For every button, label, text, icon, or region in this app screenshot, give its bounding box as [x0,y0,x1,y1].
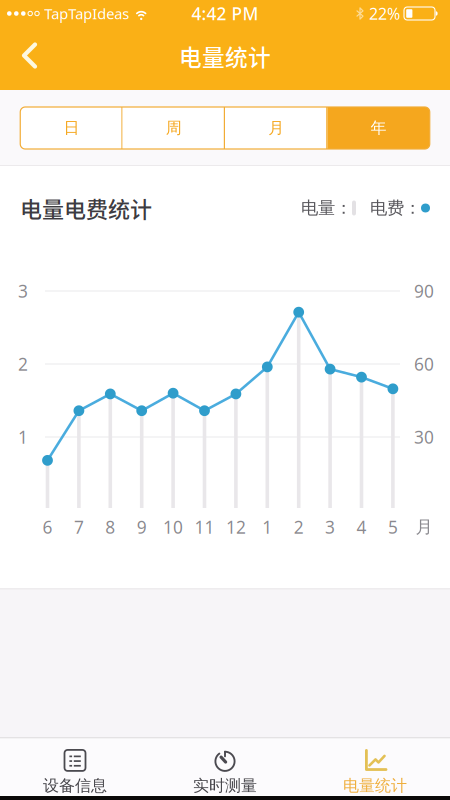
staticText: 9 [137,515,147,538]
staticText: 4:42 PM [191,2,258,25]
staticText: 7 [74,515,84,538]
button[interactable]: 年 [327,107,430,149]
button[interactable]: 日 [20,107,123,149]
button[interactable]: Back [0,40,60,77]
staticText: 90 [414,279,434,302]
button[interactable]: 月 [225,107,327,149]
staticText: 2 [294,515,304,538]
staticText: 60 [414,352,434,375]
staticText: 设备信息 [43,776,107,796]
button[interactable]: 周 [123,107,225,149]
staticText: 周 [166,118,182,138]
staticText: TapTapIdeas [44,4,129,23]
staticText: 12 [226,515,246,538]
staticText: 3 [325,515,335,538]
staticText: 日 [63,118,79,138]
staticText: 月 [415,516,432,538]
button[interactable]: 实时测量 [150,748,300,797]
staticText: 30 [414,425,434,448]
staticText: 4 [356,515,366,538]
staticText: 22% [369,3,400,24]
staticText: 10 [163,515,183,538]
staticText: 1 [262,515,272,538]
staticText: 月 [268,118,284,138]
staticText: 电量统计 [179,40,271,72]
staticText: 5 [388,515,398,538]
staticText: 1 [18,425,28,448]
staticText: 年 [371,118,387,138]
button[interactable]: 电量统计 [300,748,450,797]
staticText: 电费： [370,197,421,219]
staticText: 实时测量 [193,776,257,796]
staticText: 11 [194,515,214,538]
button[interactable]: 设备信息 [0,748,150,797]
staticText: 电量： [301,197,352,219]
staticText: 6 [42,515,52,538]
staticText: 8 [105,515,115,538]
staticText: 2 [18,352,28,375]
staticText: 3 [18,279,28,302]
staticText: 电量统计 [343,776,407,796]
staticText: 电量电费统计 [20,192,152,224]
